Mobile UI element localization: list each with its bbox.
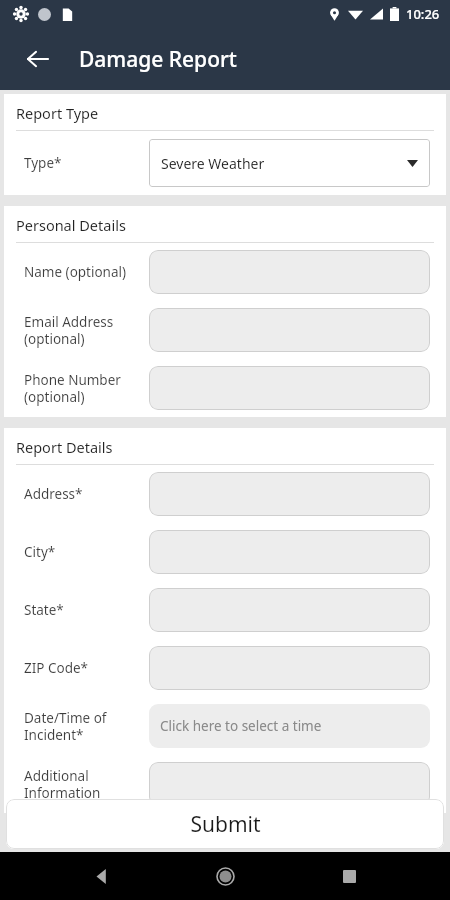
button[interactable]: Click here to select a time [149, 704, 430, 748]
button[interactable]: Submit [6, 799, 444, 849]
button[interactable]: Email Address (optional) [4, 301, 446, 359]
staticText: Email Address (optional) [24, 313, 143, 348]
button[interactable]: Type* [4, 131, 446, 195]
button[interactable]: Severe Weather [149, 139, 430, 187]
staticText: City* [24, 543, 143, 561]
staticText: Personal Details [16, 215, 126, 235]
staticText: State* [24, 601, 143, 619]
button[interactable]: Recents [327, 854, 371, 898]
button[interactable]: Back [16, 37, 60, 81]
button[interactable] [149, 646, 430, 690]
staticText: Click here to select a time [160, 717, 322, 735]
button[interactable] [149, 366, 430, 410]
button[interactable] [149, 472, 430, 516]
button[interactable]: City* [4, 523, 446, 581]
staticText: Severe Weather [161, 154, 265, 173]
staticText: Type* [24, 154, 143, 172]
button[interactable]: Address* [4, 465, 446, 523]
staticText: Report Type [16, 103, 99, 123]
button[interactable] [149, 530, 430, 574]
staticText: Submit [190, 810, 261, 839]
staticText: ZIP Code* [24, 659, 143, 677]
button[interactable]: Additional Information [4, 755, 446, 813]
button[interactable] [149, 308, 430, 352]
button[interactable]: Back [80, 854, 124, 898]
button[interactable]: ZIP Code* [4, 639, 446, 697]
staticText: Damage Report [79, 45, 237, 74]
button[interactable]: Name (optional) [4, 243, 446, 301]
button[interactable] [149, 762, 430, 806]
staticText: Report Details [16, 437, 113, 457]
button[interactable]: Phone Number (optional) [4, 359, 446, 417]
staticText: Name (optional) [24, 263, 143, 281]
button[interactable] [149, 250, 430, 294]
button[interactable]: Date/Time of Incident* [4, 697, 446, 755]
button[interactable]: Home [203, 854, 247, 898]
staticText: Address* [24, 485, 143, 503]
staticText: Additional Information [24, 767, 143, 802]
staticText: Phone Number (optional) [24, 371, 143, 406]
staticText: 10:26 [406, 5, 440, 23]
staticText: Date/Time of Incident* [24, 709, 143, 744]
button[interactable]: State* [4, 581, 446, 639]
button[interactable] [149, 588, 430, 632]
